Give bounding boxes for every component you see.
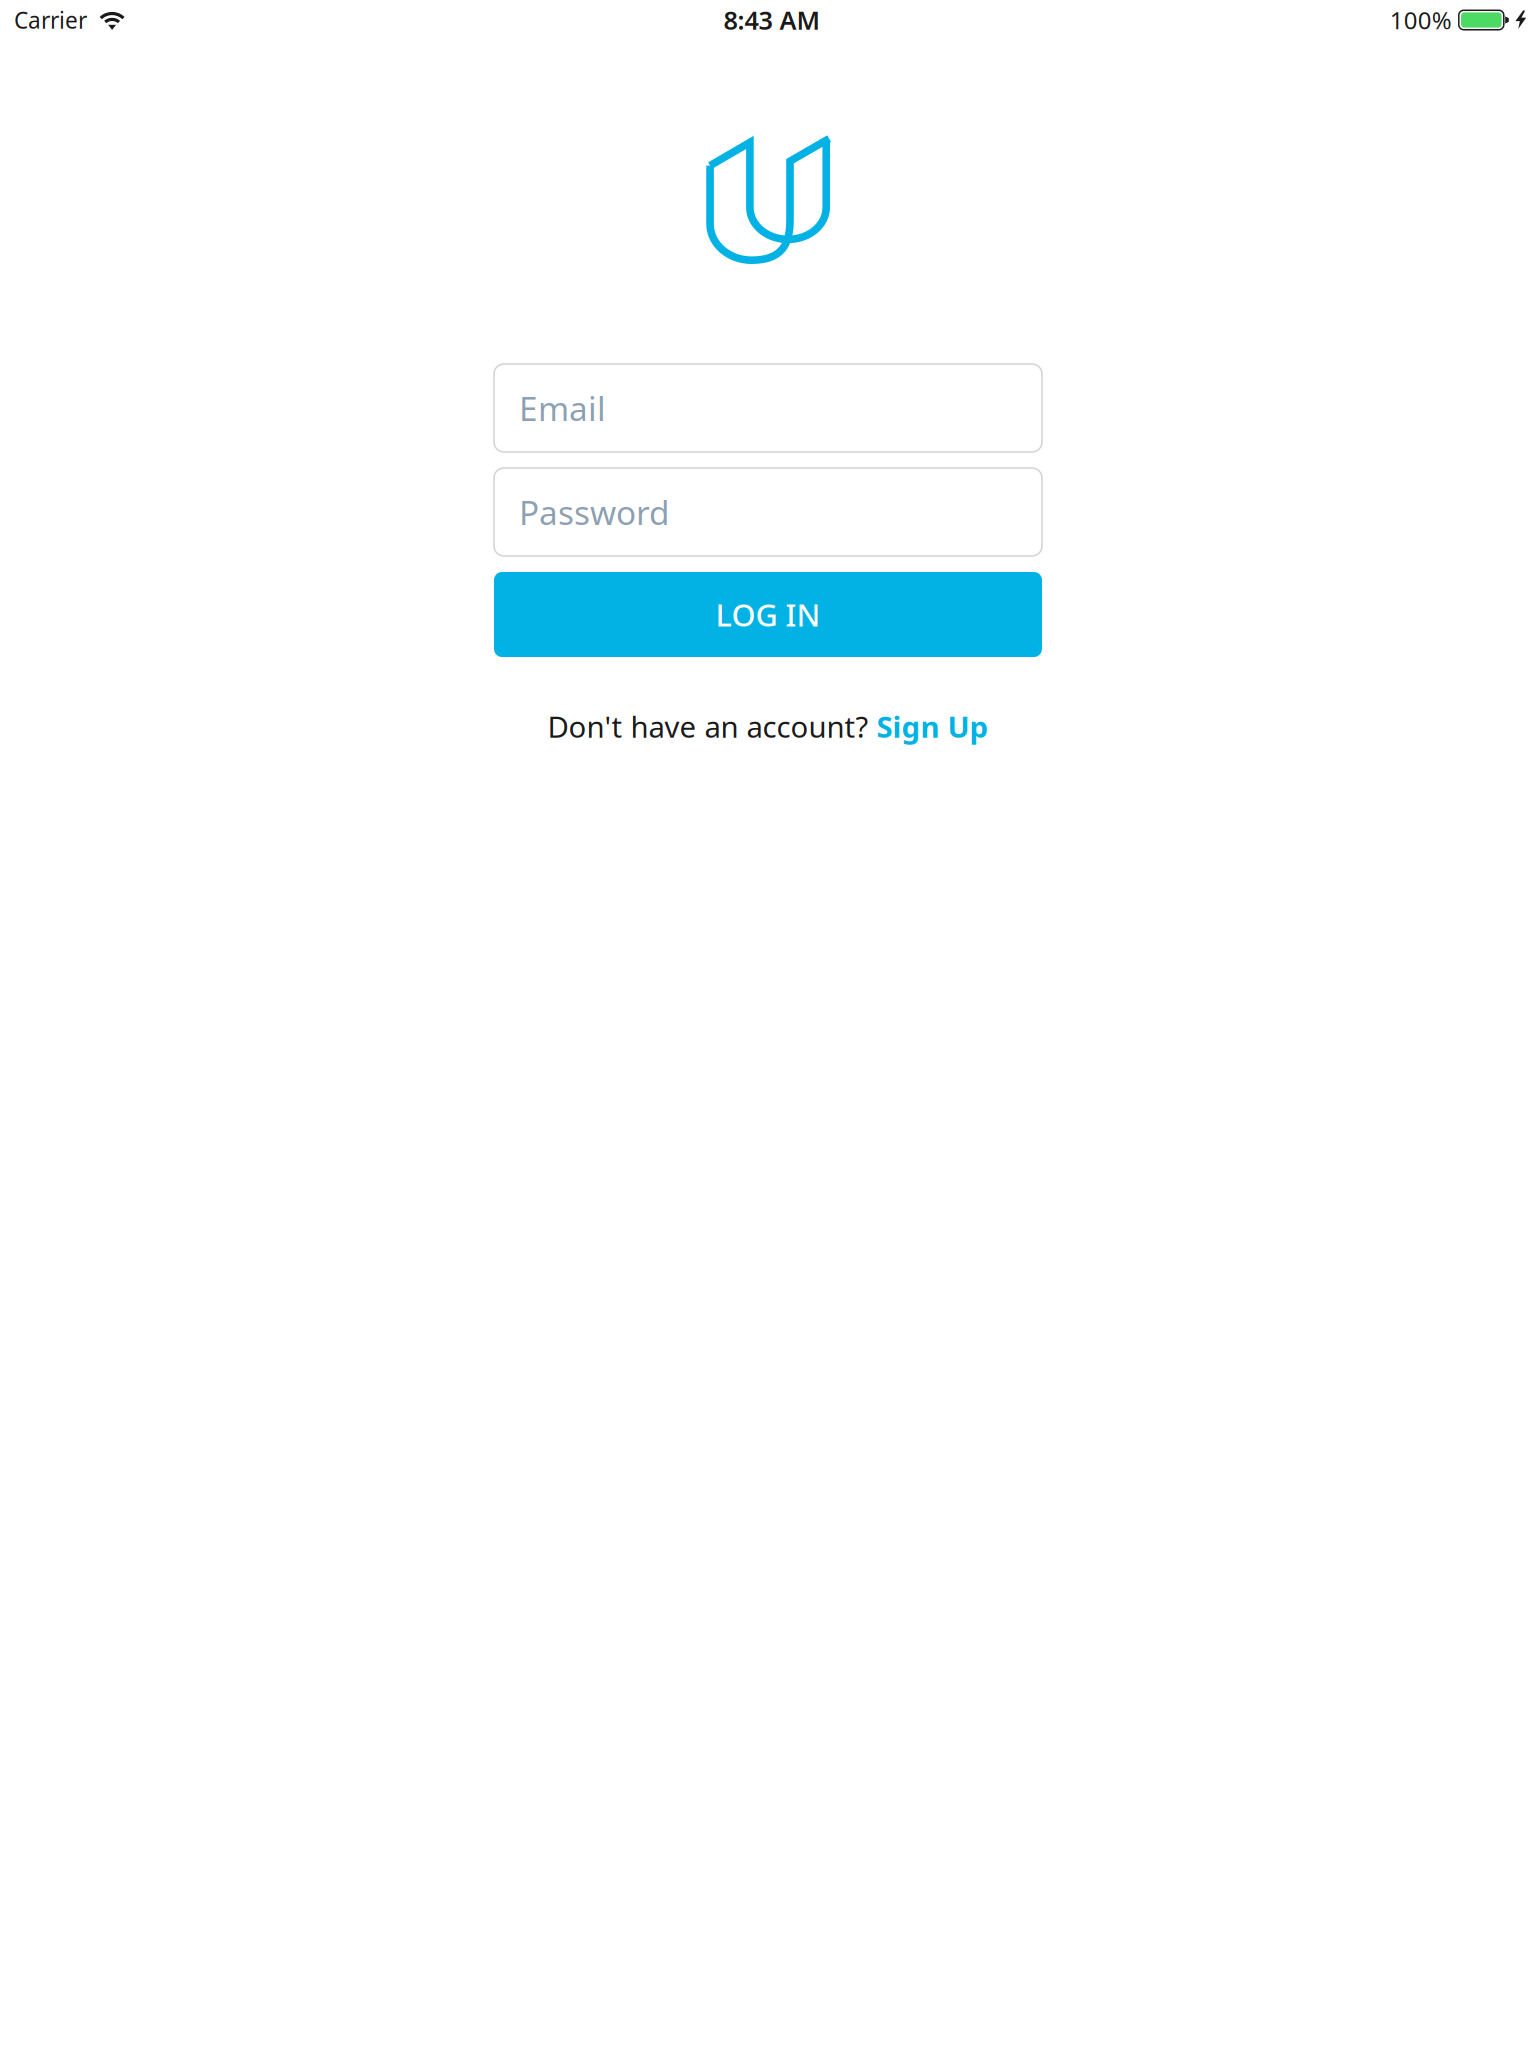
staticText: Don't have an account? [547,707,876,746]
staticText: Carrier [14,5,87,35]
staticText: Email [519,386,606,430]
staticText: Password [519,490,670,534]
button[interactable]: LOG IN [494,572,1042,657]
button[interactable]: Email [494,364,1042,452]
button[interactable]: Don't have an account? [547,707,988,746]
staticText: 8:43 AM [723,3,820,37]
staticText: LOG IN [715,594,820,635]
staticText: 100% [1390,4,1452,36]
staticText: Sign Up [876,707,988,746]
button[interactable]: Password [494,468,1042,556]
